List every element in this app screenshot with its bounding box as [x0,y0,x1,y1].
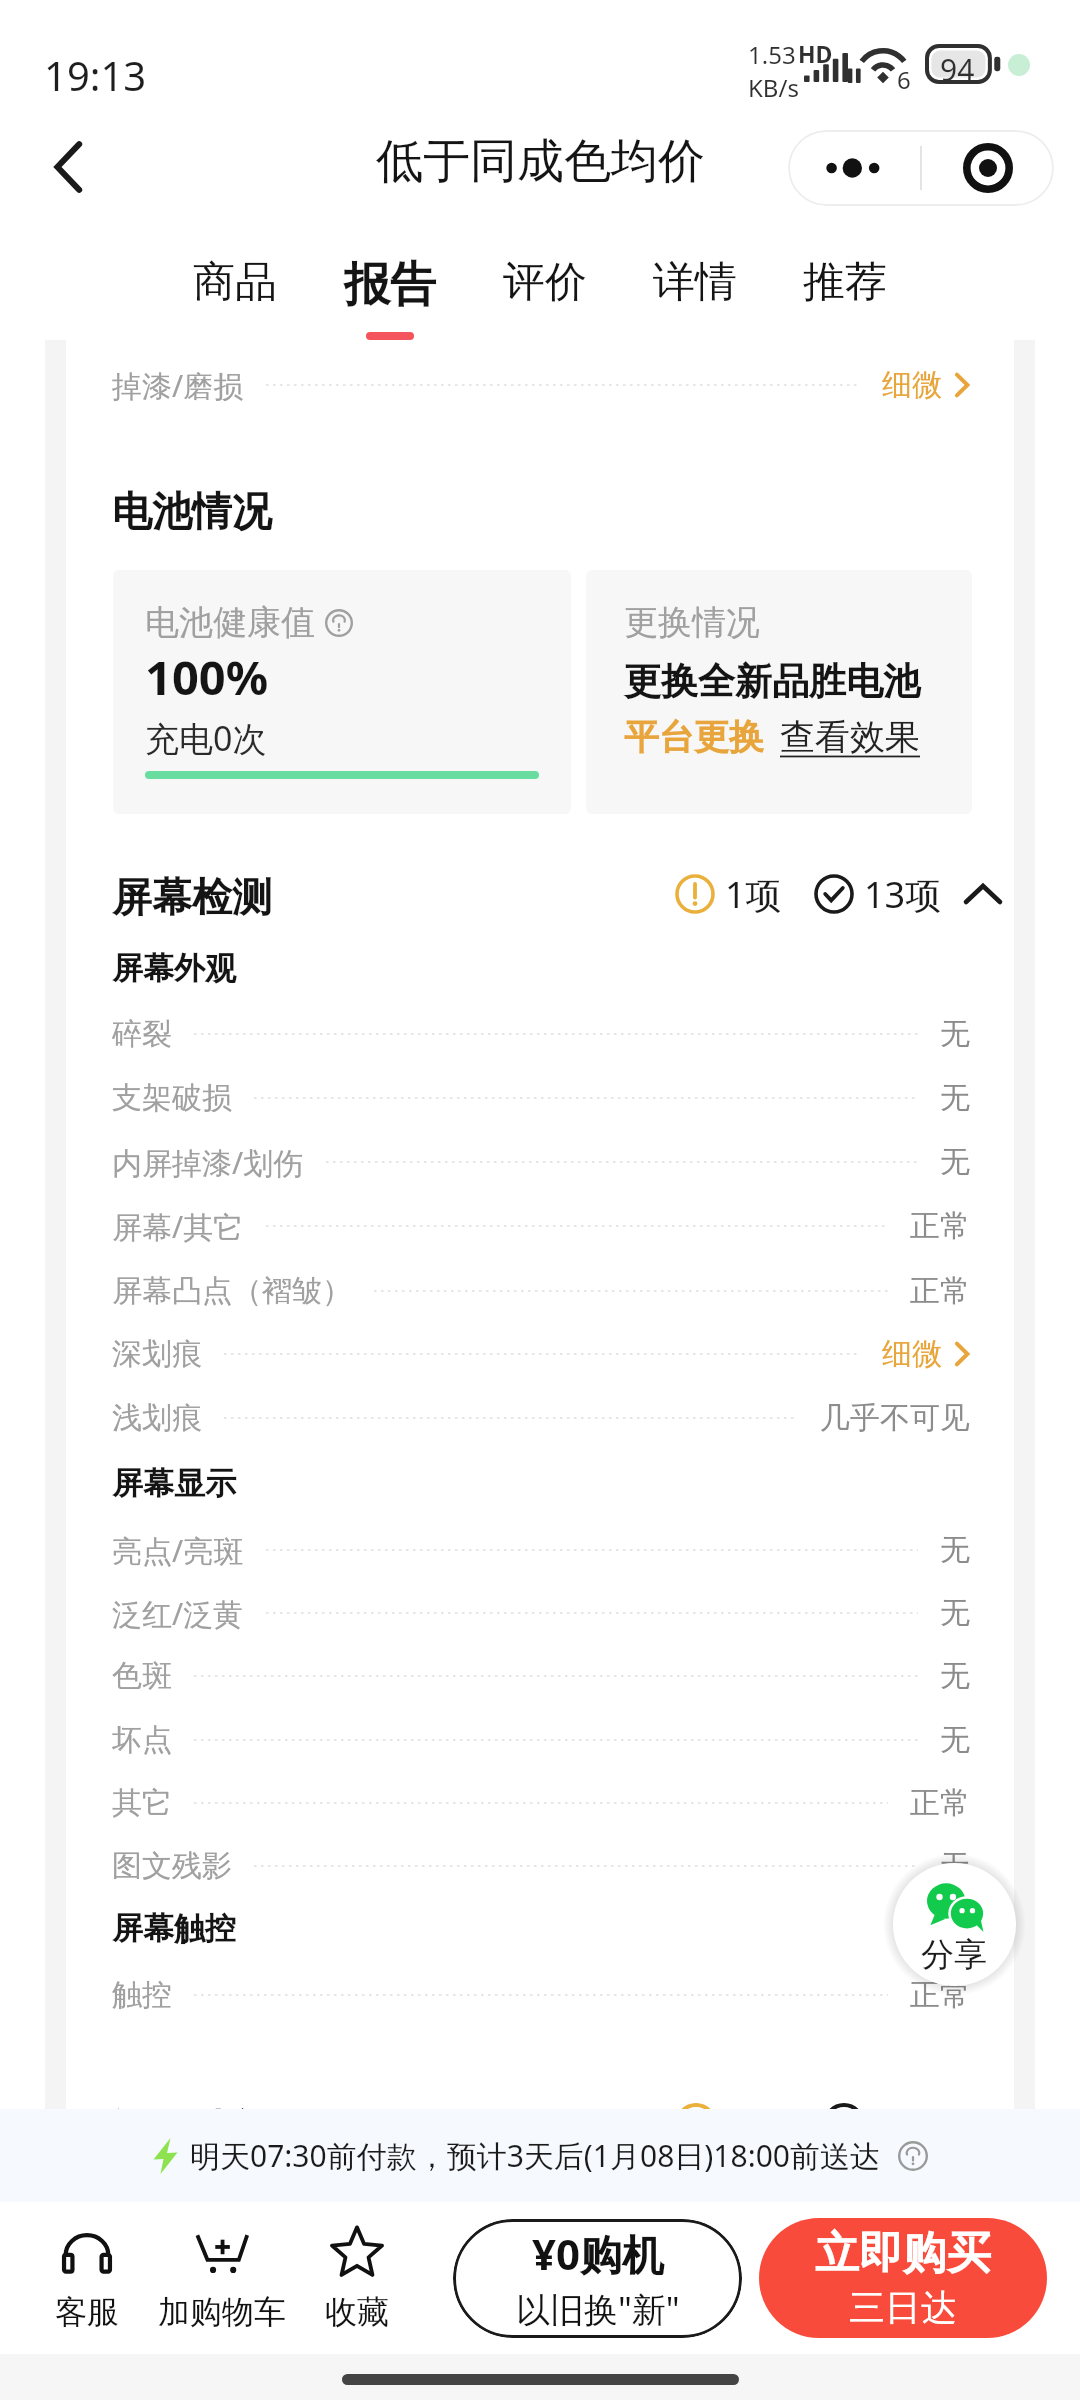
staticText: 坏点 [112,1721,172,1759]
staticText: 分享 [921,1934,987,1976]
staticText: 客服 [55,2292,119,2332]
button[interactable]: 泛红/泛黄 [112,1581,970,1645]
button[interactable]: Back [24,112,114,222]
staticText: 平台更换 [624,715,764,759]
button[interactable]: 评价 [475,222,615,340]
staticText: 评价 [503,256,587,309]
staticText: 亮点/亮斑 [112,1530,244,1571]
button[interactable]: 其它 [112,1771,970,1835]
staticText: 6 [897,63,911,96]
staticText: 无 [940,1143,970,1181]
staticText: 浅划痕 [112,1399,202,1437]
staticText: 12项 [877,2098,959,2150]
staticText: 无 [940,1594,970,1632]
button[interactable]: 浅划痕 [112,1386,970,1450]
button[interactable]: 收藏 [267,2224,447,2332]
staticText: 以旧换"新" [516,2286,680,2332]
button[interactable]: 报告 [320,222,460,340]
button[interactable]: 触控 [112,1963,970,2027]
staticText: 深划痕 [112,1335,202,1373]
staticText: 电池健康值 [145,601,315,644]
button[interactable]: 掉漆/磨损 [112,353,970,417]
staticText: 无 [940,1847,970,1885]
staticText: 查看效果 [780,715,920,759]
staticText: 1项 [725,870,782,919]
staticText: 100% [145,645,269,709]
staticText: 电池情况 [112,486,272,536]
staticText: 几乎不可见 [820,1399,970,1437]
staticText: 收藏 [325,2292,389,2332]
staticText: 报告 [344,256,436,314]
button[interactable]: 内屏掉漆/划伤 [112,1130,970,1194]
button[interactable]: Share to WeChat [893,1863,1016,1986]
button[interactable]: 推荐 [775,222,915,340]
button[interactable]: 碎裂 [112,1002,970,1066]
staticText: 更换全新品胜电池 [624,658,920,705]
staticText: 无 [940,1657,970,1695]
button[interactable]: 色斑 [112,1644,970,1708]
button[interactable]: 商品 [165,222,305,340]
staticText: 细微 [882,1335,942,1373]
staticText: 触控 [112,1976,172,2014]
staticText: HD [798,38,833,69]
staticText: 内屏掉漆/划伤 [112,1142,304,1183]
staticText: 正常 [910,1784,970,1822]
staticText: 支架破损 [112,1079,232,1117]
button[interactable]: 支架破损 [112,1066,970,1130]
button[interactable]: 加购物车 [132,2224,312,2332]
button[interactable]: 坏点 [112,1708,970,1772]
staticText: 19:13 [44,48,147,102]
button[interactable]: 电池健康值 [113,570,571,814]
button[interactable]: 客服 [0,2224,177,2332]
staticText: 细微 [882,366,942,404]
staticText: 加购物车 [158,2292,286,2332]
button[interactable]: 屏幕凸点（褶皱） [112,1259,970,1323]
staticText: 1.53 [748,38,796,71]
button[interactable]: Collapse [960,871,1006,917]
staticText: 图文残影 [112,1847,232,1885]
staticText: 94 [940,49,975,90]
staticText: 屏幕凸点（褶皱） [112,1272,352,1310]
button[interactable]: 深划痕 [112,1322,970,1386]
button[interactable]: 屏幕/其它 [112,1194,970,1258]
staticText: 碎裂 [112,1015,172,1053]
staticText: 屏幕检测 [112,872,272,922]
staticText: 色斑 [112,1657,172,1695]
staticText: 1项 [729,2098,789,2150]
staticText: 其它 [112,1784,172,1822]
staticText: 屏幕/其它 [112,1206,244,1247]
button[interactable]: 亮点/亮斑 [112,1518,970,1582]
button[interactable]: 详情 [625,222,765,340]
staticText: 泛红/泛黄 [112,1593,244,1634]
staticText: 低于同成色均价 [376,132,705,191]
button[interactable]: More [788,130,920,206]
staticText: 推荐 [803,256,887,309]
staticText: ¥0购机 [532,2225,665,2282]
staticText: 商品 [193,256,277,309]
staticText: 立即购买 [815,2226,991,2281]
staticText: 屏幕外观 [112,949,236,988]
button[interactable]: ¥0购机 [453,2219,742,2338]
staticText: 掉漆/磨损 [112,365,244,406]
staticText: 设备功能 [112,2104,272,2154]
staticText: 正常 [910,1976,970,2014]
staticText: 更换情况 [624,601,760,644]
button[interactable]: 立即购买 [759,2218,1047,2338]
staticText: 正常 [910,1272,970,1310]
staticText: 明天07:30前付款，预计3天后(1月08日)18:00前送达 [190,2135,880,2176]
staticText: 正常 [910,1207,970,1245]
staticText: 无 [940,1079,970,1117]
staticText: 充电0次 [145,715,267,761]
button[interactable]: 明天07:30前付款，预计3天后(1月08日)18:00前送达 [0,2109,1080,2202]
staticText: 13项 [864,870,942,919]
button[interactable]: 图文残影 [112,1834,970,1898]
button[interactable]: 更换情况 [586,570,972,814]
staticText: 三日达 [849,2285,957,2330]
staticText: 详情 [653,256,737,309]
staticText: 屏幕触控 [112,1909,236,1948]
button[interactable]: Menu [922,130,1054,206]
staticText: 无 [940,1721,970,1759]
staticText: 屏幕显示 [112,1464,236,1503]
staticText: 无 [940,1015,970,1053]
staticText: 无 [940,1531,970,1569]
